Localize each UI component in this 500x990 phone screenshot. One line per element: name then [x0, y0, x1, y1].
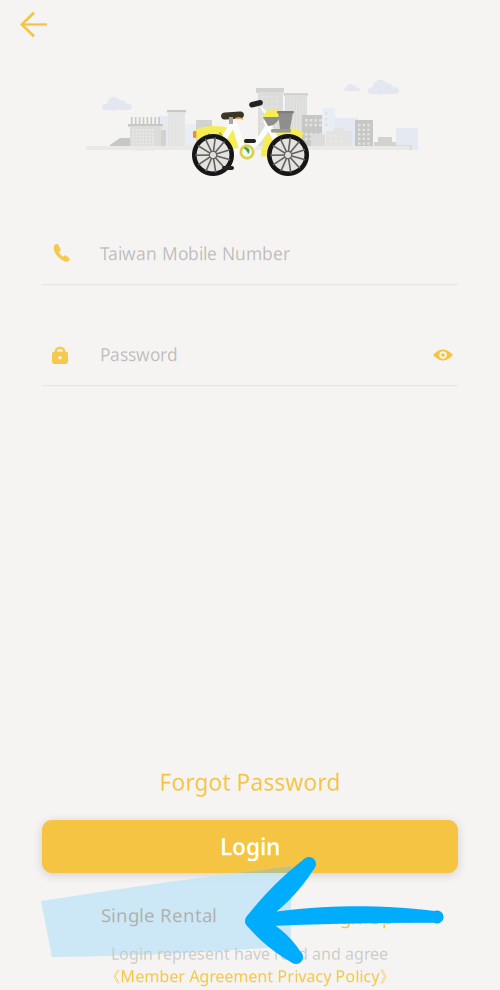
button[interactable]: Forgot Password — [150, 765, 350, 799]
staticText: Single Rental — [101, 903, 217, 927]
staticText: Login — [220, 831, 280, 861]
button[interactable]: Back — [0, 0, 500, 990]
staticText: Taiwan Mobile Number — [100, 242, 290, 265]
button[interactable]: Show password — [421, 333, 500, 990]
staticText: Forgot Password — [159, 767, 340, 797]
staticText: Login represent have read and agree — [111, 943, 388, 964]
button[interactable]: Login — [42, 820, 458, 873]
button[interactable]: 《Member Agreement Privacy Policy》 — [100, 964, 400, 988]
staticText: Password — [100, 343, 178, 366]
button[interactable]: Sign Up — [300, 899, 418, 935]
staticText: 《Member Agreement Privacy Policy》 — [104, 965, 395, 987]
button[interactable]: Single Rental — [80, 897, 238, 933]
staticText: Sign Up — [325, 905, 393, 929]
